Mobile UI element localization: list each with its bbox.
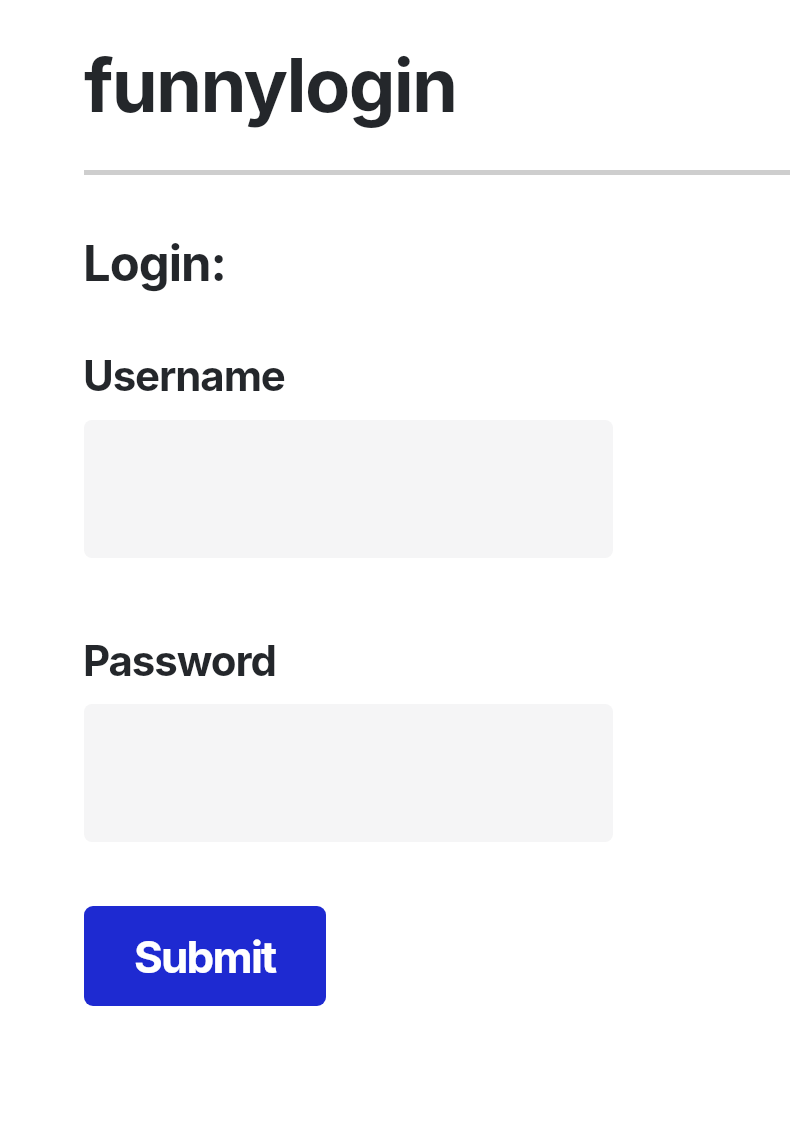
staticText: Username bbox=[83, 350, 285, 401]
staticText: Password bbox=[83, 635, 276, 686]
button[interactable]: Submit bbox=[84, 906, 326, 1006]
staticText: funnylogin bbox=[84, 40, 457, 130]
staticText: Submit bbox=[134, 930, 276, 983]
staticText: Login: bbox=[83, 234, 226, 293]
